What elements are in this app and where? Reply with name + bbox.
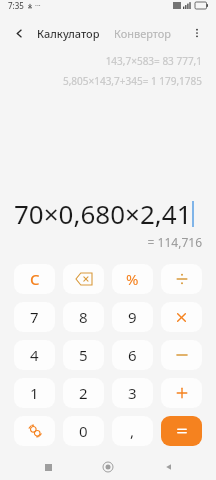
button[interactable]: 0 xyxy=(63,416,104,446)
button[interactable]: Backspace xyxy=(63,264,104,294)
button[interactable]: 9 xyxy=(112,302,153,332)
staticText: 5,805×143,7+345= 1 179,1785 xyxy=(14,74,202,88)
button[interactable]: 6 xyxy=(112,340,153,370)
staticText: = 114,716 xyxy=(14,234,202,250)
staticText: 143,7×583= 83 777,1 xyxy=(14,54,202,68)
button[interactable]: Back xyxy=(10,24,28,42)
staticText: 7:35 xyxy=(8,0,24,11)
staticText: 8 xyxy=(79,307,88,327)
button[interactable]: Конвертор xyxy=(111,24,175,43)
button[interactable]: 8 xyxy=(63,302,104,332)
staticText: , xyxy=(130,421,135,441)
staticText: 4 xyxy=(30,345,39,365)
button[interactable]: 4 xyxy=(14,340,55,370)
staticText: 2 xyxy=(79,383,88,403)
button[interactable]: 1 xyxy=(14,378,55,408)
staticText: Калкулатор xyxy=(37,26,100,41)
button[interactable]: % xyxy=(112,264,153,294)
staticText: 1 xyxy=(30,383,39,403)
button[interactable]: Multiply xyxy=(161,302,202,332)
button[interactable]: 3 xyxy=(112,378,153,408)
button[interactable]: Scientific xyxy=(14,416,55,446)
staticText: 6 xyxy=(128,345,137,365)
button[interactable]: Home xyxy=(95,454,121,480)
button[interactable]: Back xyxy=(156,454,182,480)
staticText: 0 xyxy=(79,421,88,441)
staticText: 70×0,680×2,41 xyxy=(14,196,192,231)
staticText: ··· xyxy=(35,1,41,11)
staticText: Конвертор xyxy=(114,26,172,41)
button[interactable]: Plus xyxy=(161,378,202,408)
button[interactable]: Калкулатор xyxy=(34,24,103,43)
button[interactable]: Minus xyxy=(161,340,202,370)
button[interactable]: 7 xyxy=(14,302,55,332)
button[interactable]: More options xyxy=(188,24,206,42)
staticText: 7 xyxy=(30,307,39,327)
button[interactable]: 5,805×143,7+345= 1 179,1785 xyxy=(14,74,202,88)
button[interactable]: 143,7×583= 83 777,1 xyxy=(14,54,202,68)
button[interactable]: , xyxy=(112,416,153,446)
button[interactable]: C xyxy=(14,264,55,294)
staticText: C xyxy=(30,269,40,289)
staticText: 5 xyxy=(79,345,88,365)
button[interactable]: 2 xyxy=(63,378,104,408)
button[interactable]: Divide xyxy=(161,264,202,294)
staticText: 9 xyxy=(128,307,137,327)
button[interactable]: Equals xyxy=(161,416,202,446)
staticText: 3 xyxy=(128,383,137,403)
button[interactable]: 5 xyxy=(63,340,104,370)
button[interactable]: Recents xyxy=(35,454,61,480)
staticText: % xyxy=(126,269,139,289)
